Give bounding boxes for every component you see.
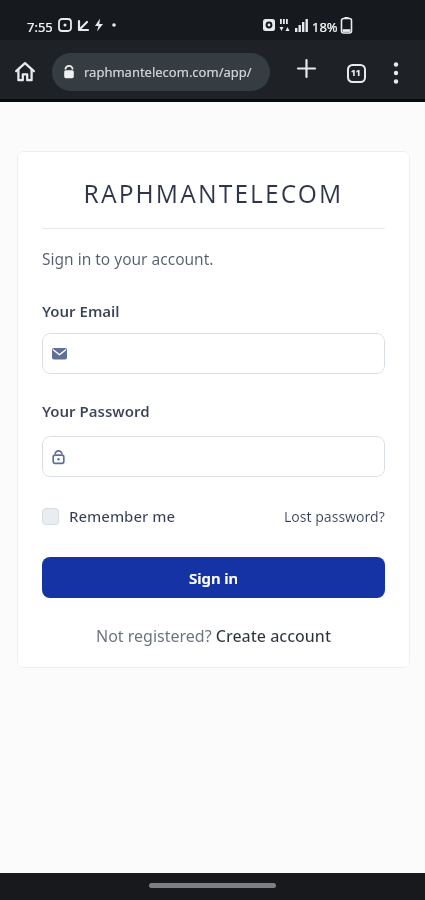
button[interactable] — [42, 333, 385, 374]
staticText: Your Email — [42, 301, 120, 321]
button[interactable] — [11, 58, 39, 86]
staticText: Sign in to your account. — [42, 248, 214, 269]
button[interactable]: Sign in — [42, 557, 385, 598]
button[interactable]: Not registered? Create account — [42, 625, 385, 647]
staticText: Remember me — [69, 506, 176, 526]
staticText: Your Password — [42, 401, 150, 421]
staticText: 11 — [351, 67, 361, 79]
button[interactable] — [292, 54, 320, 82]
button[interactable] — [382, 59, 410, 87]
staticText: 18% — [312, 18, 338, 36]
staticText: RAPHMANTELECOM — [42, 177, 385, 210]
staticText: Lost password? — [284, 507, 385, 526]
button[interactable]: Remember me — [42, 506, 176, 526]
staticText: Not registered? Create account — [96, 625, 332, 647]
staticText: 7:55 — [27, 18, 53, 36]
button[interactable]: Lost password? — [284, 507, 385, 526]
button[interactable]: 11 — [342, 59, 370, 87]
staticText: Sign in — [189, 568, 239, 588]
staticText: raphmantelecom.com/app/log — [84, 63, 270, 81]
button[interactable]: raphmantelecom.com/app/log — [52, 53, 270, 91]
button[interactable] — [42, 436, 385, 477]
